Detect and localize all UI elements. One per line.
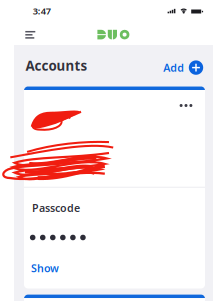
button[interactable]: Add bbox=[0, 0, 44, 18]
staticText: Show bbox=[31, 261, 59, 275]
staticText: Passcode bbox=[32, 201, 80, 215]
staticText: Add bbox=[163, 60, 184, 75]
staticText: Accounts bbox=[25, 57, 87, 74]
staticText: 3:47 bbox=[33, 5, 51, 17]
